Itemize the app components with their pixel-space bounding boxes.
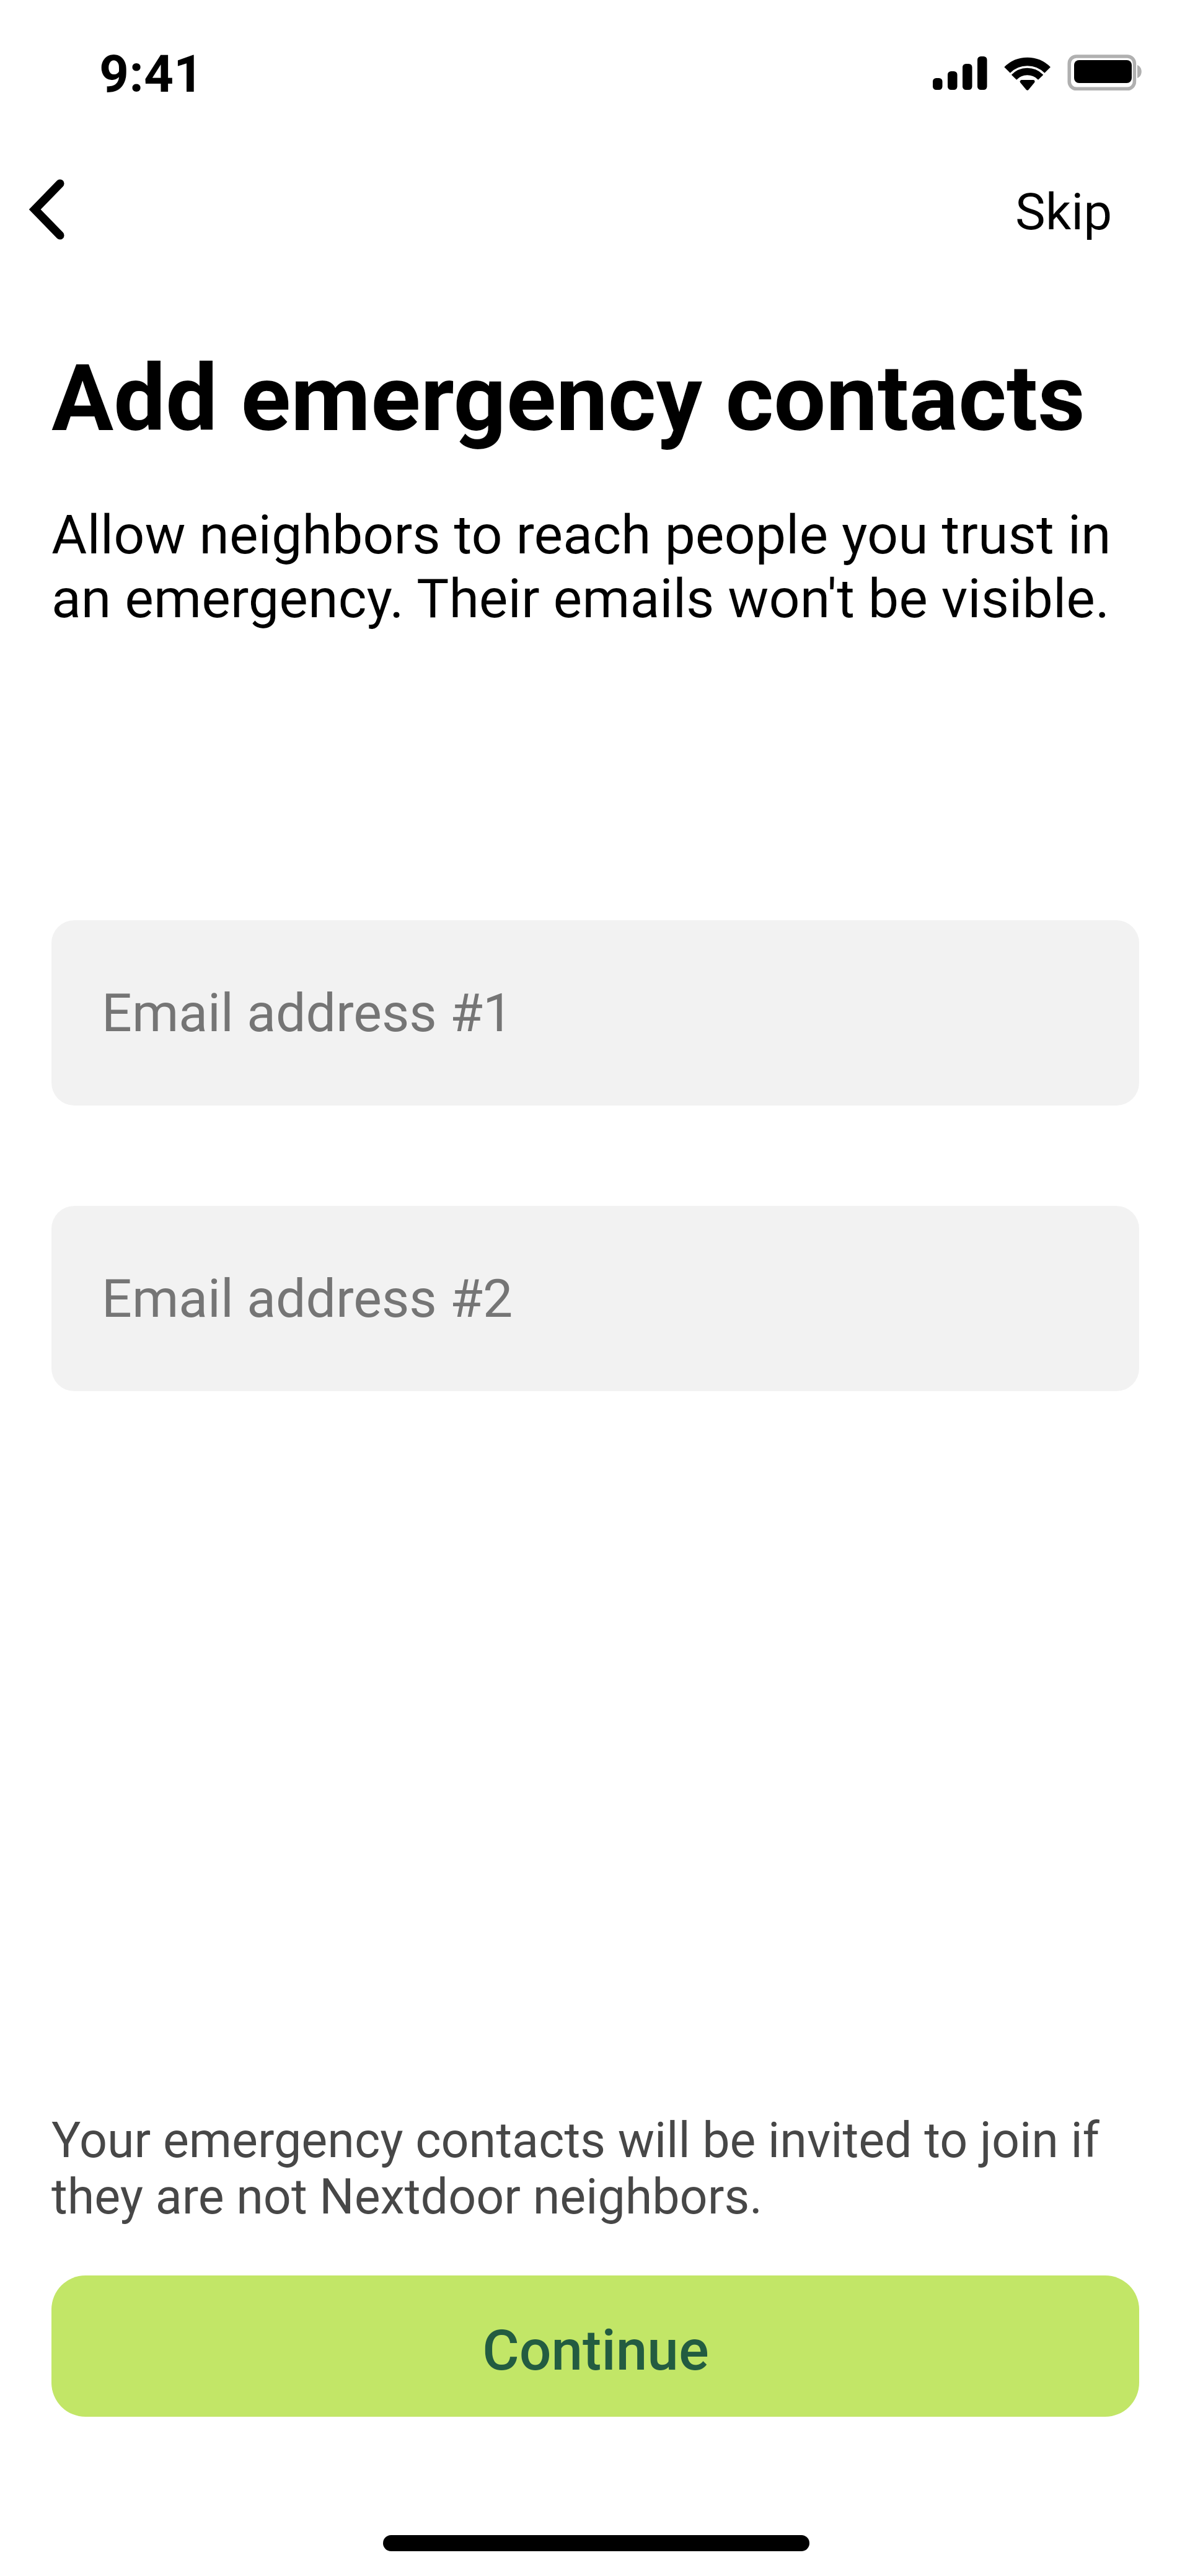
- staticText: Your emergency contacts will be invited …: [51, 2112, 1130, 2225]
- staticText: Skip: [1015, 182, 1113, 242]
- staticText: Allow neighbors to reach people you trus…: [51, 503, 1124, 630]
- button[interactable]: Skip: [989, 170, 1138, 253]
- staticText: Add emergency contacts: [51, 345, 1085, 453]
- button[interactable]: Continue: [51, 2275, 1139, 2417]
- button[interactable]: Email address #1: [51, 920, 1139, 1106]
- staticText: Continue: [482, 2318, 709, 2384]
- staticText: Email address #1: [102, 982, 513, 1044]
- button[interactable]: Email address #2: [51, 1206, 1139, 1391]
- staticText: 9:41: [99, 43, 204, 104]
- staticText: Email address #2: [102, 1267, 513, 1330]
- button[interactable]: Back: [4, 154, 90, 265]
